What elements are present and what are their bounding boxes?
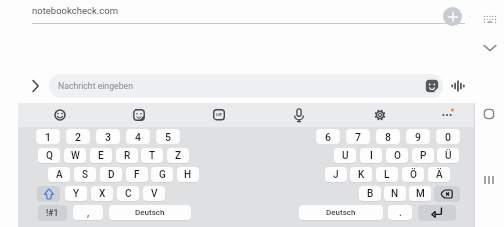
- button[interactable]: A: [48, 167, 70, 182]
- staticText: D: [108, 169, 115, 181]
- button[interactable]: [424, 78, 440, 94]
- button[interactable]: [49, 74, 443, 98]
- button[interactable]: U: [334, 148, 356, 163]
- staticText: ,: [87, 207, 90, 219]
- button[interactable]: [52, 107, 68, 123]
- button[interactable]: [37, 186, 60, 201]
- button[interactable]: F: [126, 167, 148, 182]
- button[interactable]: Deutsch: [299, 205, 383, 220]
- button[interactable]: D: [100, 167, 122, 182]
- button[interactable]: W: [64, 148, 86, 163]
- staticText: 7: [355, 131, 361, 143]
- button[interactable]: E: [90, 148, 112, 163]
- staticText: L: [384, 169, 390, 181]
- button[interactable]: [418, 205, 456, 220]
- button[interactable]: G: [151, 167, 173, 182]
- button[interactable]: H: [177, 167, 199, 182]
- button[interactable]: [291, 107, 307, 123]
- button[interactable]: T: [141, 148, 163, 163]
- button[interactable]: I: [360, 148, 382, 163]
- button[interactable]: [482, 42, 498, 54]
- staticText: H: [184, 169, 192, 181]
- button[interactable]: O: [386, 148, 408, 163]
- staticText: J: [333, 169, 339, 181]
- button[interactable]: [482, 107, 496, 121]
- button[interactable]: [31, 79, 40, 93]
- button[interactable]: X: [91, 186, 113, 201]
- staticText: Deutsch: [326, 208, 356, 217]
- staticText: Y: [73, 188, 80, 200]
- staticText: Z: [175, 150, 182, 162]
- staticText: C: [125, 188, 132, 200]
- button[interactable]: .: [388, 205, 412, 220]
- button[interactable]: Ä: [428, 167, 450, 182]
- button[interactable]: [450, 78, 466, 94]
- staticText: Q: [46, 150, 53, 162]
- staticText: U: [342, 150, 349, 162]
- staticText: F: [134, 169, 140, 181]
- staticText: Deutsch: [135, 208, 165, 217]
- staticText: Ü: [445, 150, 452, 162]
- button[interactable]: V: [143, 186, 165, 201]
- button[interactable]: M: [409, 186, 431, 201]
- button[interactable]: 0: [436, 129, 460, 144]
- staticText: G: [159, 169, 166, 181]
- staticText: 8: [385, 131, 391, 143]
- staticText: E: [98, 150, 104, 162]
- button[interactable]: Deutsch: [109, 205, 191, 220]
- staticText: B: [367, 188, 374, 200]
- staticText: I: [370, 150, 373, 162]
- button[interactable]: R: [116, 148, 138, 163]
- button[interactable]: Ö: [402, 167, 424, 182]
- button[interactable]: P: [412, 148, 434, 163]
- staticText: Nachricht eingeben: [58, 81, 133, 91]
- staticText: R: [124, 150, 131, 162]
- button[interactable]: [443, 7, 462, 26]
- button[interactable]: GIF: [213, 109, 225, 120]
- button[interactable]: [482, 13, 498, 27]
- staticText: 0: [445, 131, 451, 143]
- staticText: 3: [105, 131, 111, 143]
- button[interactable]: 8: [376, 129, 400, 144]
- staticText: 1: [45, 131, 51, 143]
- button[interactable]: [372, 107, 388, 123]
- button[interactable]: 2: [66, 129, 90, 144]
- staticText: notebookcheck.com: [32, 5, 118, 16]
- button[interactable]: [434, 186, 460, 201]
- staticText: !#1: [46, 208, 59, 218]
- button[interactable]: 9: [406, 129, 430, 144]
- button[interactable]: 6: [316, 129, 340, 144]
- staticText: K: [358, 169, 365, 181]
- button[interactable]: !#1: [38, 205, 67, 220]
- button[interactable]: K: [350, 167, 372, 182]
- button[interactable]: 1: [36, 129, 60, 144]
- staticText: V: [151, 188, 158, 200]
- staticText: M: [416, 188, 425, 200]
- button[interactable]: [131, 107, 147, 123]
- staticText: .: [399, 207, 402, 219]
- button[interactable]: 4: [126, 129, 150, 144]
- button[interactable]: B: [359, 186, 381, 201]
- button[interactable]: Y: [65, 186, 87, 201]
- button[interactable]: ,: [73, 205, 103, 220]
- staticText: W: [71, 150, 80, 162]
- button[interactable]: Ü: [437, 148, 459, 163]
- staticText: P: [420, 150, 427, 162]
- button[interactable]: L: [376, 167, 398, 182]
- staticText: Ö: [410, 169, 417, 181]
- button[interactable]: Z: [167, 148, 189, 163]
- staticText: Ä: [436, 169, 443, 181]
- button[interactable]: S: [74, 167, 96, 182]
- staticText: A: [56, 169, 63, 181]
- button[interactable]: 5: [156, 129, 180, 144]
- button[interactable]: C: [117, 186, 139, 201]
- staticText: 4: [135, 131, 141, 143]
- button[interactable]: Q: [38, 148, 60, 163]
- button[interactable]: [438, 107, 456, 123]
- button[interactable]: N: [384, 186, 406, 201]
- button[interactable]: J: [325, 167, 347, 182]
- button[interactable]: [482, 174, 496, 186]
- button[interactable]: 7: [346, 129, 370, 144]
- button[interactable]: 3: [96, 129, 120, 144]
- staticText: N: [391, 188, 399, 200]
